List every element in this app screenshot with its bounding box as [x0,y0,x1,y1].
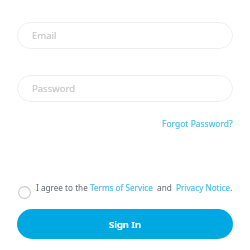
button[interactable]: Forgot Password? [162,118,233,130]
staticText: Email [32,29,57,42]
other: Agree to terms checkbox [17,185,31,199]
button[interactable]: Sign In [17,209,233,239]
staticText: Forgot Password? [162,118,233,130]
staticText: Sign In [109,218,141,231]
button[interactable]: Password [17,75,233,102]
staticText: I agree to the Terms of Service and Priv… [36,182,233,193]
button[interactable]: Email [17,22,233,49]
button[interactable]: Agree to terms checkbox [17,182,233,199]
staticText: Password [32,82,75,95]
